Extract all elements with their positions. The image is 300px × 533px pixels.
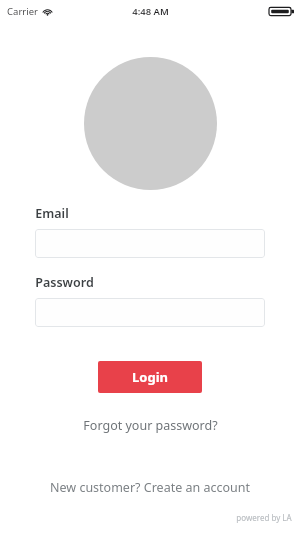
button[interactable]: Email input [35, 229, 265, 258]
staticText: New customer? Create an account [50, 479, 250, 496]
staticText: Email [35, 205, 69, 222]
staticText: Password [35, 274, 94, 291]
button[interactable]: New customer? Create an account [40, 477, 260, 498]
button[interactable]: Password input [35, 298, 265, 327]
staticText: 4:48 AM [132, 5, 169, 18]
staticText: Forgot your password? [83, 417, 218, 434]
button[interactable]: Login [98, 361, 202, 393]
staticText: Carrier [7, 5, 38, 18]
staticText: powered by LA [236, 512, 292, 523]
button[interactable]: Forgot your password? [73, 415, 228, 436]
staticText: Login [132, 368, 168, 386]
button[interactable]: Profile photo [84, 57, 217, 190]
